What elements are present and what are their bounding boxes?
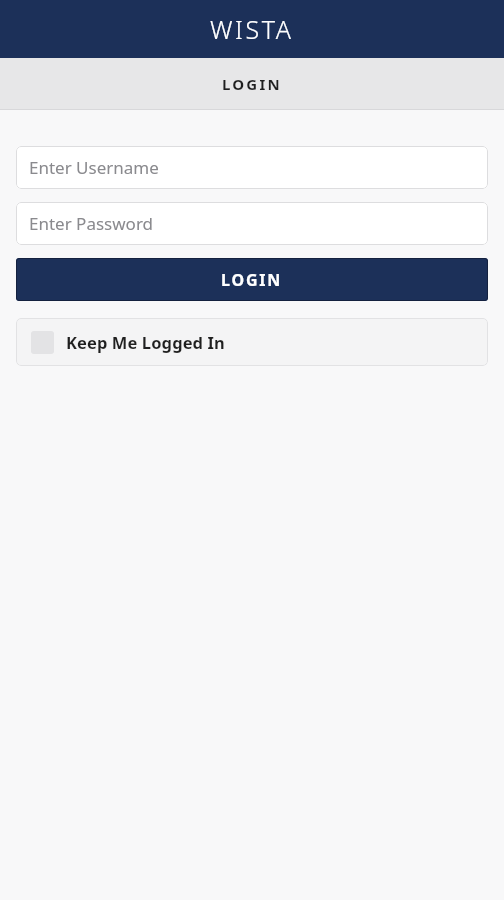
- button[interactable]: Enter Username: [16, 146, 488, 189]
- staticText: LOGIN: [221, 269, 283, 291]
- staticText: Enter Username: [29, 156, 159, 179]
- staticText: Keep Me Logged In: [66, 331, 225, 353]
- button[interactable]: LOGIN: [16, 258, 488, 301]
- staticText: WISTA: [210, 12, 294, 46]
- button[interactable]: Enter Password: [16, 202, 488, 245]
- button[interactable]: Keep me logged in checkbox: [16, 318, 488, 366]
- staticText: LOGIN: [222, 74, 282, 94]
- staticText: Enter Password: [29, 212, 154, 235]
